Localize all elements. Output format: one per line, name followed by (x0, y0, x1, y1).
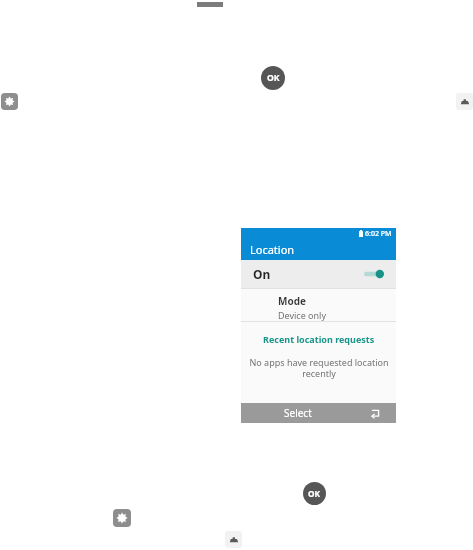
button[interactable]: Cloud (225, 531, 242, 548)
button[interactable]: Settings (113, 509, 131, 527)
button[interactable]: Back (354, 403, 396, 423)
button[interactable]: On (241, 260, 396, 288)
button[interactable]: OK (261, 66, 285, 90)
staticText: Device only (278, 309, 327, 321)
button[interactable]: Cloud (456, 93, 473, 110)
staticText: OK (308, 488, 321, 499)
button[interactable]: Mode (241, 289, 396, 321)
staticText: Recent location requests (263, 333, 375, 345)
staticText: Select (284, 406, 312, 420)
staticText: 6:02 PM (365, 229, 392, 239)
button[interactable]: Location (241, 239, 396, 260)
button[interactable]: OK (303, 482, 326, 505)
staticText: On (253, 266, 271, 282)
button[interactable]: Settings (1, 93, 18, 110)
button[interactable]: Select (241, 403, 354, 423)
staticText: OK (267, 72, 280, 84)
staticText: Location (250, 242, 295, 257)
staticText: No apps have requested location recently (249, 356, 389, 379)
staticText: Mode (278, 294, 306, 308)
